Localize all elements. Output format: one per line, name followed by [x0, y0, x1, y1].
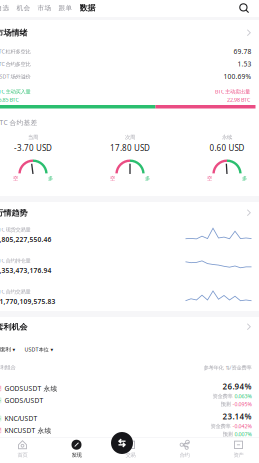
staticText: 市场情绪: [0, 28, 27, 38]
staticText: 空: [207, 175, 212, 182]
staticText: 预测: [222, 431, 232, 438]
staticText: 跟单: [58, 4, 72, 12]
staticText: 首页: [17, 452, 27, 458]
button[interactable]: 交易: [103, 437, 157, 463]
staticText: 资金费率: [212, 393, 232, 399]
button[interactable]: 交易: [111, 432, 133, 454]
staticText: BTC 合约基差: [0, 118, 37, 127]
button[interactable]: 机会: [16, 4, 30, 12]
staticText: -0.095%: [232, 401, 251, 408]
staticText: 参考年化 ⇅/资金费率: [203, 364, 251, 371]
staticText: 交易: [125, 452, 135, 458]
staticText: 69.78: [233, 47, 251, 56]
staticText: BTC 现货交易量: [0, 226, 30, 233]
staticText: 多: [242, 175, 247, 182]
staticText: -0.042%: [232, 423, 251, 430]
button[interactable]: 跟单: [58, 4, 72, 12]
staticText: BTC 合约持仓量: [0, 257, 30, 264]
staticText: 预测: [220, 401, 230, 408]
staticText: 行情趋势: [0, 208, 27, 218]
staticText: 资产: [233, 452, 243, 458]
staticText: 永续: [222, 134, 232, 141]
staticText: -3.70 USD: [14, 143, 52, 153]
staticText: 空: [13, 175, 18, 182]
staticText: 多: [0, 415, 1, 422]
staticText: 多: [145, 175, 150, 182]
button[interactable]: 多: [0, 411, 251, 438]
button[interactable]: 行情趋势: [0, 208, 251, 218]
staticText: 套利机会: [0, 322, 27, 332]
staticText: 26.94%: [222, 381, 251, 392]
staticText: USDT 场外溢价: [0, 73, 30, 80]
staticText: 资金费率: [210, 423, 230, 429]
staticText: 8,353,473,176.94: [0, 266, 51, 275]
staticText: 空: [110, 175, 115, 182]
staticText: 自选: [0, 4, 9, 12]
staticText: 空: [0, 427, 1, 434]
staticText: 11,770,109,575.83: [0, 297, 55, 306]
button[interactable]: 发现: [49, 437, 103, 463]
staticText: BTC 合约交易量: [0, 288, 30, 295]
staticText: 100.69%: [223, 72, 251, 81]
staticText: KNCUSDT 永续: [4, 426, 51, 435]
staticText: 17.80 USD: [110, 143, 150, 153]
staticText: 0.063%: [234, 393, 251, 400]
button[interactable]: USDT本位 ▾: [24, 346, 53, 353]
staticText: USDT本位 ▾: [24, 346, 53, 353]
staticText: 机会: [16, 4, 30, 12]
staticText: KNC/USDT: [4, 414, 37, 423]
staticText: 22.98 BTC: [227, 96, 250, 103]
staticText: 多: [0, 397, 1, 404]
staticText: 市场: [37, 4, 51, 12]
button[interactable]: 搜索: [239, 3, 250, 14]
staticText: 多: [48, 175, 53, 182]
staticText: 0.007%: [234, 431, 251, 438]
staticText: 当周: [28, 134, 38, 141]
staticText: 发现: [71, 452, 81, 458]
button[interactable]: 空: [0, 381, 251, 408]
staticText: BTC 主动卖出量: [215, 88, 250, 95]
staticText: 36.85 BTC: [0, 96, 18, 103]
staticText: BTC 主动买入量: [0, 88, 30, 95]
button[interactable]: 市场: [37, 4, 51, 12]
staticText: 套利组合: [0, 364, 15, 371]
staticText: BTC 合约多空比: [0, 60, 30, 67]
staticText: 期套利 ▾: [0, 346, 15, 353]
button[interactable]: 首页: [0, 437, 49, 463]
button[interactable]: 资产: [211, 437, 259, 463]
button[interactable]: 市场情绪: [0, 28, 251, 38]
button[interactable]: 期套利 ▾: [0, 346, 15, 353]
button[interactable]: 套利机会: [0, 322, 251, 332]
staticText: 1.53: [237, 59, 251, 68]
staticText: 合约: [179, 452, 189, 458]
button[interactable]: 自选: [0, 4, 9, 12]
button[interactable]: 数据: [79, 3, 95, 13]
staticText: 23.14%: [222, 411, 251, 422]
staticText: 0.60 USD: [209, 143, 244, 153]
staticText: 空: [0, 385, 1, 392]
staticText: 数据: [79, 3, 95, 13]
staticText: GODS/USDT: [4, 396, 43, 405]
staticText: BTC 杠杆多空比: [0, 48, 30, 55]
staticText: 次周: [125, 134, 135, 141]
staticText: GODSUSDT 永续: [4, 384, 57, 393]
staticText: 1,805,227,550.46: [0, 235, 51, 244]
button[interactable]: 合约: [157, 437, 211, 463]
